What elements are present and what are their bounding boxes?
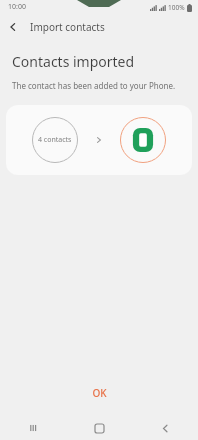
button[interactable]: Back xyxy=(0,14,26,40)
staticText: 4 contacts xyxy=(38,135,72,145)
button[interactable]: Back xyxy=(132,416,198,440)
button[interactable]: OK xyxy=(0,376,198,410)
staticText: Contacts imported xyxy=(12,52,135,71)
button[interactable]: Recents xyxy=(0,416,66,440)
staticText: OK xyxy=(92,386,107,400)
staticText: The contact has been added to your Phone… xyxy=(12,80,176,91)
staticText: 10:00 xyxy=(8,2,26,12)
button[interactable]: Home xyxy=(66,416,132,440)
staticText: 100% xyxy=(168,3,185,12)
staticText: Import contacts xyxy=(30,20,105,34)
button[interactable]: 4 contacts xyxy=(6,105,192,175)
